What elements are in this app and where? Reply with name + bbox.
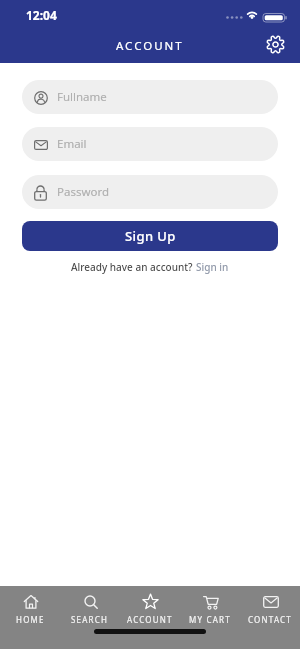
staticText: Sign Up xyxy=(125,227,176,245)
staticText: Sign in xyxy=(196,260,229,274)
staticText: HOME xyxy=(16,614,45,625)
staticText: Email xyxy=(57,136,87,152)
staticText: Fullname xyxy=(57,89,107,105)
button[interactable]: Sign in xyxy=(196,260,229,274)
button[interactable]: HOME xyxy=(0,593,60,625)
button[interactable]: Fullname xyxy=(22,80,278,114)
staticText: ACCOUNT xyxy=(127,614,173,625)
button[interactable]: ACCOUNT xyxy=(120,593,180,625)
button[interactable]: SEARCH xyxy=(60,593,120,625)
button[interactable]: Password xyxy=(22,175,278,209)
staticText: ACCOUNT xyxy=(116,38,184,54)
staticText: Already have an account? xyxy=(71,260,196,274)
button[interactable] xyxy=(265,34,285,54)
staticText: Password xyxy=(57,184,110,200)
button[interactable]: Email xyxy=(22,127,278,161)
staticText: CONTACT xyxy=(248,614,292,625)
staticText: SEARCH xyxy=(71,614,109,625)
staticText: MY CART xyxy=(189,614,231,625)
button[interactable]: CONTACT xyxy=(240,593,300,625)
button[interactable]: Sign Up xyxy=(22,221,278,251)
staticText: 12:04 xyxy=(26,7,57,23)
button[interactable]: MY CART xyxy=(180,593,240,625)
